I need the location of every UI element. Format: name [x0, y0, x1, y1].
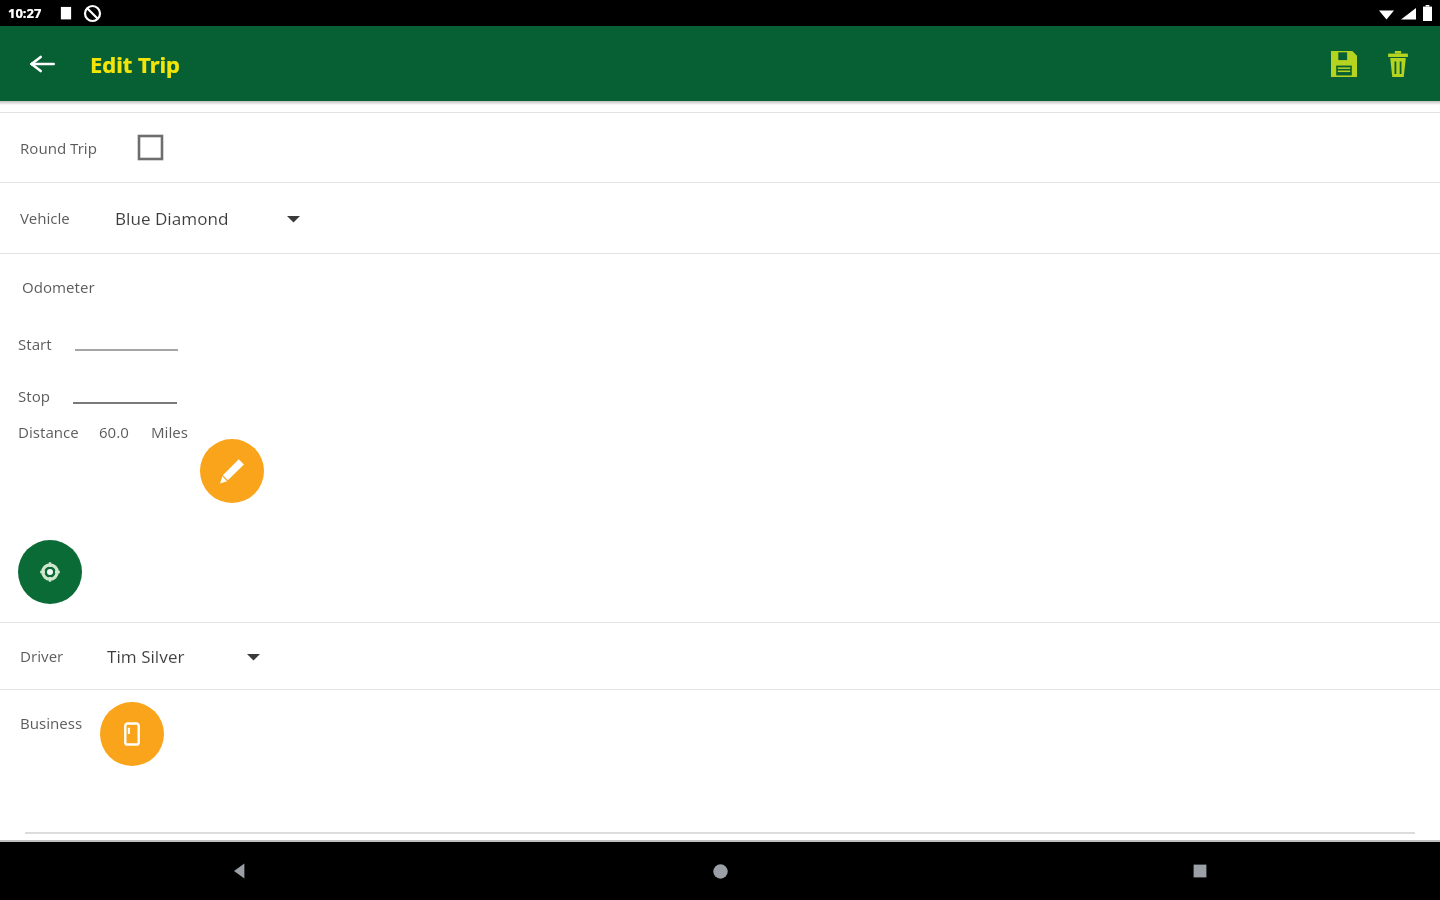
staticText: Miles	[151, 422, 188, 442]
button[interactable]: Edit odometer	[200, 439, 264, 503]
staticText: Driver	[20, 646, 64, 666]
button[interactable]: Save	[1318, 38, 1370, 90]
staticText: Round Trip	[20, 138, 97, 158]
staticText: Business	[20, 713, 83, 733]
button[interactable]: Driver	[0, 623, 1440, 689]
staticText: Start	[18, 334, 52, 354]
staticText: Vehicle	[20, 208, 70, 228]
button[interactable]: Business category	[100, 702, 164, 766]
button[interactable]: Current location	[18, 540, 82, 604]
button[interactable]: Recent apps	[960, 842, 1440, 900]
staticText: Edit Trip	[90, 49, 180, 79]
button[interactable]: Round Trip	[0, 113, 1440, 182]
staticText: Odometer	[22, 277, 95, 297]
staticText: 10:27	[8, 4, 42, 22]
staticText: Stop	[18, 386, 50, 406]
button[interactable]: Delete	[1372, 38, 1424, 90]
staticText: Distance	[18, 422, 79, 442]
button[interactable]: Back	[0, 842, 480, 900]
staticText: Blue Diamond	[115, 207, 229, 230]
button[interactable]: Back	[14, 36, 70, 92]
button[interactable]: Home	[480, 842, 960, 900]
staticText: Tim Silver	[107, 645, 185, 668]
button[interactable]: Vehicle	[0, 183, 1440, 253]
staticText: 60.0	[99, 422, 129, 442]
